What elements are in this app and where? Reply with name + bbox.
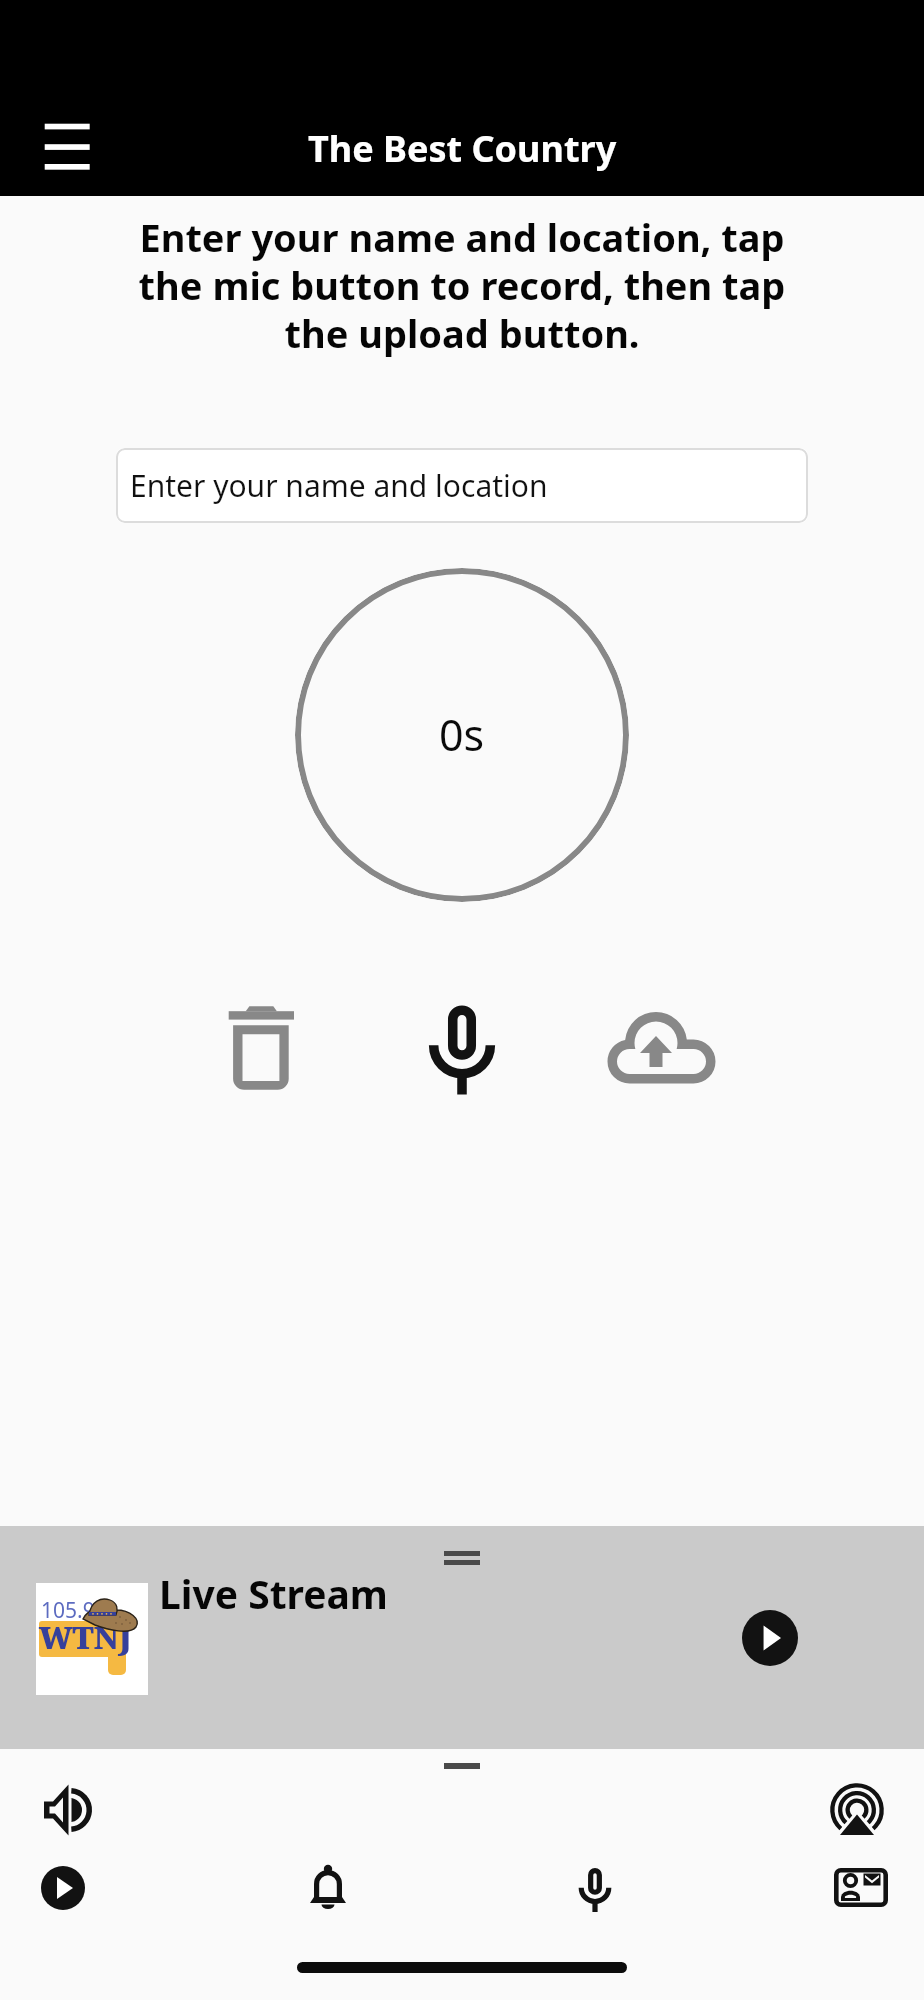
button[interactable]: Cast to device xyxy=(815,1770,899,1854)
staticText: The Best Country xyxy=(308,124,617,173)
button[interactable]: Alerts xyxy=(286,1846,370,1930)
staticText: Enter your name and location xyxy=(130,465,548,506)
button[interactable]: Play xyxy=(21,1846,105,1930)
button[interactable]: Contact us xyxy=(819,1846,903,1930)
button[interactable]: Play live stream xyxy=(742,1610,798,1666)
staticText: Enter your name and location, tap the mi… xyxy=(0,211,924,359)
button[interactable]: Open navigation menu xyxy=(30,115,100,179)
staticText: 105.9 xyxy=(41,1596,95,1625)
button[interactable]: Record audio xyxy=(414,1002,510,1098)
staticText: 0s xyxy=(439,705,485,764)
button[interactable]: Recording timer xyxy=(295,568,629,902)
button[interactable]: Upload recording xyxy=(606,1000,717,1111)
button[interactable]: Microphone xyxy=(553,1848,637,1932)
staticText: WTNJ xyxy=(39,1616,132,1658)
button[interactable]: Volume xyxy=(28,1768,112,1852)
staticText: Live Stream xyxy=(159,1567,388,1620)
button[interactable]: Enter your name and location xyxy=(116,448,808,523)
button[interactable]: Delete recording xyxy=(213,1000,309,1096)
